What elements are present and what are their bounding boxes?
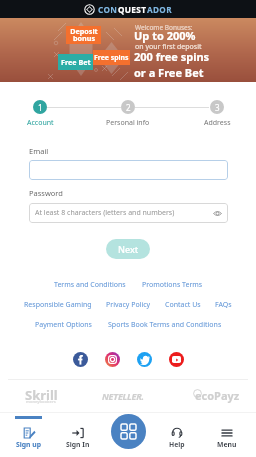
staticText: 3 bbox=[215, 102, 220, 113]
button[interactable]: Privacy Policy bbox=[101, 297, 156, 313]
staticText: 2 bbox=[126, 102, 131, 113]
button[interactable]: Sign up bbox=[4, 412, 53, 449]
staticText: QUEST bbox=[118, 4, 147, 15]
staticText: Menu bbox=[217, 440, 237, 449]
button[interactable]: Terms and Conditions bbox=[49, 277, 131, 293]
staticText: Skrill bbox=[25, 386, 58, 404]
button[interactable]: FAQs bbox=[210, 297, 237, 313]
staticText: FAQs bbox=[215, 300, 232, 310]
button[interactable]: Games bbox=[111, 414, 146, 449]
staticText: Sign In bbox=[66, 440, 90, 449]
button[interactable]: Menu bbox=[202, 412, 252, 449]
button[interactable]: Help bbox=[152, 412, 202, 449]
staticText: or a Free Bet bbox=[134, 65, 204, 80]
staticText: Contact Us bbox=[165, 300, 201, 310]
staticText: NETELLER. bbox=[102, 390, 144, 402]
staticText: Address bbox=[204, 118, 231, 128]
staticText: ADOR bbox=[147, 4, 172, 15]
staticText: Sports Book Terms and Conditions bbox=[108, 320, 222, 330]
staticText: Personal info bbox=[106, 118, 150, 128]
button[interactable]: Sign In bbox=[53, 412, 102, 449]
button[interactable]: Twitter bbox=[137, 352, 152, 367]
staticText: Next bbox=[118, 243, 139, 255]
button[interactable] bbox=[29, 160, 228, 180]
button[interactable]: At least 8 characters (letters and numbe… bbox=[29, 203, 228, 223]
staticText: Responsible Gaming bbox=[24, 300, 92, 310]
button[interactable]: 1 bbox=[33, 100, 47, 114]
staticText: Account bbox=[27, 118, 54, 128]
staticText: Help bbox=[169, 440, 185, 449]
staticText: Sign up bbox=[16, 440, 41, 449]
staticText: Welcome Bonuses: bbox=[135, 23, 193, 32]
button[interactable]: Sports Book Terms and Conditions bbox=[103, 317, 227, 333]
button[interactable]: Promotions Terms bbox=[137, 277, 208, 293]
staticText: Terms and Conditions bbox=[54, 280, 126, 290]
button[interactable]: Responsible Gaming bbox=[19, 297, 97, 313]
staticText: ecoPayz bbox=[195, 388, 240, 403]
button[interactable]: 2 bbox=[121, 100, 135, 114]
button[interactable]: YouTube bbox=[169, 352, 184, 367]
button[interactable]: Instagram bbox=[105, 352, 120, 367]
staticText: moneybookers bbox=[26, 399, 56, 404]
button[interactable]: Facebook bbox=[73, 352, 88, 367]
button[interactable]: Payment Options bbox=[30, 317, 97, 333]
staticText: Free Bet bbox=[61, 57, 91, 67]
button[interactable]: Deposit bonus bbox=[66, 26, 101, 44]
staticText: At least 8 characters (letters and numbe… bbox=[35, 208, 175, 218]
staticText: on your first deposit bbox=[135, 42, 202, 52]
staticText: 1 bbox=[38, 102, 43, 113]
staticText: Promotions Terms bbox=[142, 280, 203, 290]
staticText: Email bbox=[29, 146, 49, 156]
button[interactable]: Show password bbox=[211, 207, 223, 219]
staticText: 200 free spins bbox=[134, 49, 210, 64]
staticText: Payment Options bbox=[35, 320, 92, 330]
button[interactable]: Free Bet bbox=[58, 54, 93, 70]
button[interactable]: Contact Us bbox=[160, 297, 206, 313]
staticText: Free spins bbox=[94, 53, 129, 62]
staticText: Password bbox=[29, 188, 63, 198]
button[interactable]: Next bbox=[106, 239, 150, 259]
staticText: Up to 200% bbox=[134, 28, 196, 43]
staticText: CON bbox=[98, 4, 118, 15]
button[interactable]: Free spins bbox=[93, 50, 130, 65]
staticText: Deposit bonus bbox=[70, 26, 98, 44]
button[interactable]: 3 bbox=[210, 100, 224, 114]
staticText: Privacy Policy bbox=[106, 300, 151, 310]
